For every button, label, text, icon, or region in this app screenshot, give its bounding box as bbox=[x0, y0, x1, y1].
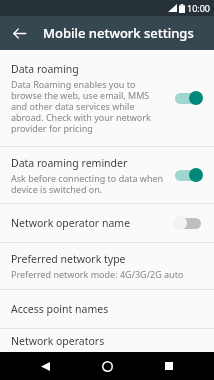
staticText: Access point names bbox=[11, 302, 109, 316]
button[interactable]: Preferred network type bbox=[0, 243, 214, 289]
staticText: Data roaming reminder bbox=[11, 156, 128, 170]
staticText: Preferred network mode: 4G/3G/2G auto bbox=[11, 268, 184, 280]
button[interactable]: Data roaming bbox=[0, 50, 214, 146]
button[interactable]: Network operator name bbox=[0, 204, 214, 242]
staticText: Data roaming bbox=[11, 62, 79, 76]
button[interactable]: Toggle on bbox=[173, 90, 203, 106]
staticText: Mobile network settings bbox=[43, 24, 194, 42]
staticText: Preferred network type bbox=[11, 252, 126, 266]
button[interactable]: Access point names bbox=[0, 290, 214, 328]
staticText: Data Roaming enables you to browse the w… bbox=[11, 78, 165, 134]
button[interactable]: Back bbox=[5, 19, 33, 47]
button[interactable]: Toggle on bbox=[173, 167, 203, 183]
button[interactable]: Back bbox=[28, 352, 62, 380]
staticText: Network operators bbox=[11, 334, 105, 348]
staticText: Ask before connecting to data when devic… bbox=[11, 172, 165, 195]
button[interactable]: Data roaming reminder bbox=[0, 147, 214, 203]
button[interactable]: Toggle off bbox=[173, 215, 203, 231]
staticText: 10:00 bbox=[187, 2, 211, 14]
button[interactable]: Recent apps bbox=[152, 352, 186, 380]
button[interactable]: Home bbox=[90, 352, 124, 380]
button[interactable]: Network operators bbox=[0, 329, 214, 352]
staticText: Network operator name bbox=[11, 216, 131, 230]
